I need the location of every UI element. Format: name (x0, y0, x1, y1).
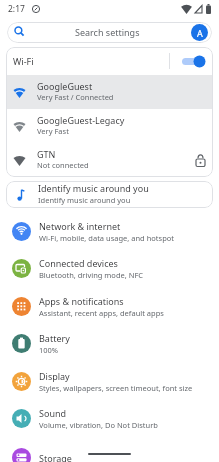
staticText: GoogleGuest (37, 80, 93, 92)
staticText: Very Fast / Connected (37, 92, 114, 102)
staticText: Identify music around you (38, 195, 131, 205)
button[interactable]: A (191, 24, 208, 41)
staticText: 2:17 (8, 3, 25, 15)
button[interactable]: Display (0, 362, 219, 400)
staticText: Very Fast (37, 126, 69, 136)
staticText: Search settings (75, 26, 140, 38)
button[interactable]: Sound (0, 400, 219, 437)
button[interactable] (182, 55, 206, 68)
button[interactable]: Wi-Fi (6, 47, 213, 75)
button[interactable]: Identify music around you (6, 181, 213, 208)
staticText: Not connected (37, 160, 89, 170)
button[interactable]: Apps & notifications (0, 287, 219, 325)
staticText: A (197, 27, 203, 39)
staticText: Network & internet (39, 220, 121, 232)
button[interactable]: Search settings (7, 22, 212, 43)
button[interactable]: GTN (6, 143, 213, 177)
button[interactable]: Storage (0, 445, 219, 462)
staticText: Bluetooth, driving mode, NFC (39, 270, 144, 280)
staticText: Display (39, 370, 70, 382)
staticText: Wi-Fi (13, 55, 34, 67)
staticText: Connected devices (39, 257, 118, 269)
button[interactable]: GoogleGuest (6, 75, 213, 109)
staticText: Battery (39, 332, 70, 344)
staticText: Wi-Fi, mobile, data usage, and hotspot (39, 233, 174, 243)
button[interactable]: Network & internet (0, 212, 219, 250)
staticText: Identify music around you (38, 182, 149, 194)
staticText: Assistant, recent apps, default apps (39, 308, 164, 318)
staticText: Volume, vibration, Do Not Disturb (39, 420, 158, 430)
staticText: GoogleGuest-Legacy (37, 114, 125, 126)
button[interactable]: Battery (0, 325, 219, 362)
staticText: GTN (37, 148, 56, 160)
staticText: Apps & notifications (39, 295, 124, 307)
button[interactable]: GoogleGuest-Legacy (6, 109, 213, 143)
staticText: Storage (39, 452, 72, 462)
staticText: Styles, wallpapers, screen timeout, font… (39, 383, 193, 393)
staticText: 100% (39, 345, 59, 355)
button[interactable]: Connected devices (0, 250, 219, 287)
staticText: Sound (39, 407, 67, 419)
